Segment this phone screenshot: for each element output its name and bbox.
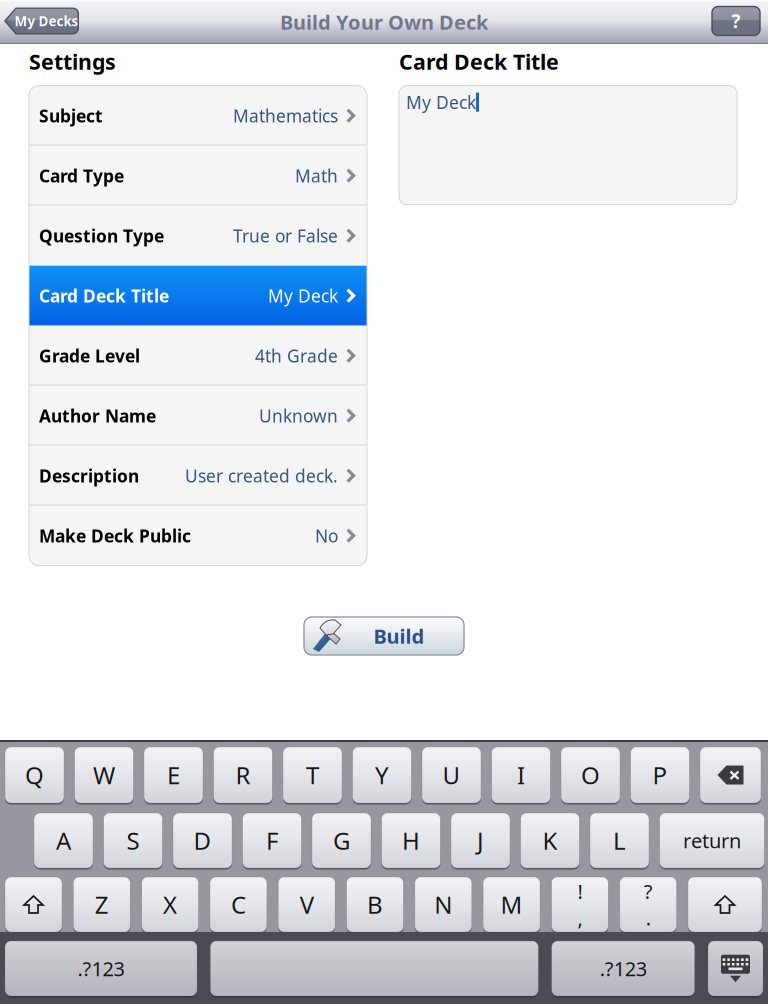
staticText: L: [613, 825, 626, 856]
button[interactable]: H: [381, 813, 440, 868]
button[interactable]: Q: [5, 747, 64, 803]
staticText: ,: [577, 904, 582, 931]
button[interactable]: Author Name: [29, 386, 367, 446]
button[interactable]: L: [590, 813, 649, 868]
button[interactable]: Subject: [29, 86, 367, 146]
staticText: Mathematics: [233, 104, 338, 127]
staticText: P: [652, 759, 667, 791]
button[interactable]: Y: [352, 747, 411, 803]
staticText: C: [231, 889, 246, 920]
button[interactable]: U: [422, 747, 481, 803]
staticText: .?123: [77, 955, 124, 982]
button[interactable]: M: [483, 877, 540, 932]
button[interactable]: Shift: [5, 877, 62, 932]
staticText: R: [235, 759, 250, 791]
button[interactable]: J: [451, 813, 510, 868]
button[interactable]: W: [74, 747, 133, 803]
button[interactable]: .?123: [5, 941, 197, 996]
staticText: O: [581, 759, 600, 791]
button[interactable]: D: [173, 813, 232, 868]
staticText: V: [300, 889, 314, 920]
staticText: D: [193, 825, 211, 856]
staticText: H: [402, 825, 420, 856]
button[interactable]: Grade Level: [29, 326, 367, 386]
staticText: .?123: [600, 955, 647, 982]
staticText: No: [315, 524, 338, 547]
staticText: return: [683, 827, 741, 854]
button[interactable]: N: [415, 877, 472, 932]
staticText: Q: [25, 759, 44, 791]
button[interactable]: B: [346, 877, 403, 932]
button[interactable]: Z: [73, 877, 130, 932]
button[interactable]: E: [144, 747, 203, 803]
button[interactable]: P: [630, 747, 689, 803]
staticText: Card Deck Title: [39, 284, 169, 307]
staticText: A: [56, 825, 71, 856]
staticText: Make Deck Public: [39, 524, 191, 547]
button[interactable]: G: [312, 813, 371, 868]
button[interactable]: T: [283, 747, 342, 803]
staticText: M: [501, 889, 523, 920]
staticText: Author Name: [39, 404, 156, 427]
button[interactable]: I: [491, 747, 550, 803]
staticText: [371, 953, 377, 984]
button[interactable]: Delete: [700, 747, 761, 803]
staticText: ?: [644, 878, 653, 904]
staticText: Y: [375, 759, 389, 791]
button[interactable]: A: [34, 813, 93, 868]
staticText: Build Your Own Deck: [280, 9, 488, 35]
staticText: Description: [39, 464, 139, 487]
button[interactable]: Question Type: [29, 206, 367, 266]
button[interactable]: ?: [620, 877, 677, 932]
staticText: Z: [95, 889, 109, 920]
staticText: User created deck.: [185, 464, 338, 487]
staticText: !: [577, 878, 582, 904]
button[interactable]: My Decks: [4, 7, 79, 34]
staticText: Math: [295, 164, 338, 187]
button[interactable]: return: [659, 813, 764, 868]
button[interactable]: X: [142, 877, 199, 932]
staticText: E: [167, 759, 180, 791]
staticText: X: [163, 889, 177, 920]
button[interactable]: Card Deck Title: [29, 266, 367, 326]
button[interactable]: Make Deck Public: [29, 506, 367, 566]
staticText: My Deck: [406, 91, 476, 114]
staticText: .: [646, 904, 651, 931]
button[interactable]: !: [551, 877, 608, 932]
button[interactable]: V: [278, 877, 335, 932]
button[interactable]: Card Type: [29, 146, 367, 206]
button[interactable]: Description: [29, 446, 367, 506]
staticText: W: [93, 759, 115, 791]
button[interactable]: K: [520, 813, 579, 868]
staticText: My Deck: [268, 284, 338, 307]
staticText: U: [442, 759, 460, 791]
staticText: N: [434, 889, 452, 920]
staticText: Unknown: [259, 404, 338, 427]
button[interactable]: Hide keyboard: [708, 941, 763, 996]
staticText: F: [266, 825, 278, 856]
staticText: Settings: [29, 47, 116, 76]
staticText: Subject: [39, 104, 103, 127]
button[interactable]: F: [242, 813, 301, 868]
button[interactable]: S: [103, 813, 162, 868]
staticText: 4th Grade: [255, 344, 338, 367]
staticText: J: [477, 825, 484, 856]
staticText: True or False: [233, 224, 338, 247]
button[interactable]: .?123: [552, 941, 695, 996]
button[interactable]: Build: [304, 617, 464, 655]
button[interactable]: Shift: [688, 877, 762, 932]
staticText: T: [306, 759, 319, 791]
button[interactable]: R: [213, 747, 272, 803]
staticText: ?: [731, 9, 740, 33]
button[interactable]: [210, 941, 538, 996]
staticText: Grade Level: [39, 344, 140, 367]
button[interactable]: C: [210, 877, 267, 932]
button[interactable]: Help: [712, 6, 760, 35]
staticText: My Decks: [14, 12, 78, 30]
staticText: Card Deck Title: [399, 47, 559, 76]
staticText: G: [333, 825, 350, 856]
staticText: K: [542, 825, 557, 856]
staticText: Card Type: [39, 164, 124, 187]
staticText: B: [367, 889, 383, 920]
button[interactable]: O: [561, 747, 620, 803]
